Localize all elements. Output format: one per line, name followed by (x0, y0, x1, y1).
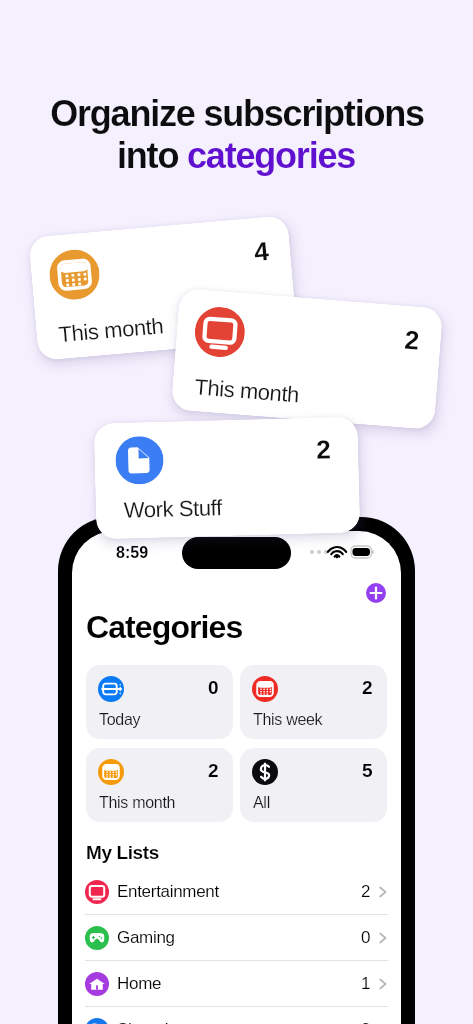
staticText: categories (187, 135, 356, 175)
staticText: 2 (208, 760, 219, 781)
button[interactable]: Add category (366, 583, 386, 603)
staticText: 5 (362, 760, 373, 781)
button[interactable]: 5 (240, 748, 387, 822)
staticText: 2 (362, 677, 373, 698)
staticText: This month (193, 374, 300, 407)
button[interactable]: 2 (93, 417, 360, 539)
staticText: 2 (361, 882, 371, 901)
staticText: into (117, 135, 187, 175)
staticText: Entertainment (117, 882, 219, 901)
button[interactable]: 2 (86, 748, 233, 822)
staticText: Today (99, 711, 141, 729)
staticText: This week (253, 711, 323, 729)
staticText: Organize subscriptions (50, 93, 424, 133)
staticText: 2 (404, 325, 420, 355)
button[interactable]: Home (72, 961, 401, 1006)
staticText: 4 (253, 236, 269, 266)
button[interactable]: Gaming (72, 915, 401, 960)
button[interactable]: 0 (86, 665, 233, 739)
staticText: 3 (361, 1020, 371, 1024)
staticText: My Lists (86, 842, 159, 863)
button[interactable]: 2 (240, 665, 387, 739)
staticText: 0 (208, 677, 219, 698)
button[interactable]: Entertainment (72, 869, 401, 914)
button[interactable]: 2 (171, 288, 443, 430)
button[interactable]: Shopping (72, 1007, 401, 1024)
staticText: This month (99, 794, 176, 812)
staticText: Categories (86, 609, 243, 645)
staticText: This month (58, 313, 164, 347)
staticText: Home (117, 974, 162, 993)
staticText: All (253, 794, 270, 812)
button[interactable]: 4 (28, 215, 298, 361)
staticText: Gaming (117, 928, 175, 947)
staticText: 1 (361, 974, 371, 993)
staticText: 8:59 (116, 544, 149, 562)
staticText: 0 (361, 928, 371, 947)
staticText: Shopping (117, 1020, 187, 1024)
staticText: Work Stuff (123, 495, 222, 523)
staticText: 2 (316, 434, 331, 464)
